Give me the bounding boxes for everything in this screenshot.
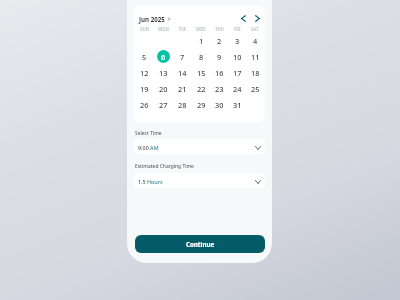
button[interactable]: 29 (195, 98, 208, 111)
staticText: 11 (251, 52, 260, 62)
button[interactable]: 4 (249, 34, 262, 47)
staticText: 10 (233, 52, 242, 62)
staticText: 30 (215, 100, 224, 110)
staticText: 25 (251, 84, 260, 94)
staticText: 1.5 Hours (138, 178, 163, 185)
button[interactable]: 20 (157, 82, 170, 95)
staticText: 26 (140, 100, 149, 110)
staticText: 15 (197, 68, 206, 78)
button[interactable]: 3 (231, 34, 244, 47)
button[interactable]: Jun 2025 (139, 15, 171, 23)
button[interactable]: 24 (231, 82, 244, 95)
staticText: 1 (199, 36, 204, 46)
button[interactable]: 15 (195, 66, 208, 79)
staticText: 19 (140, 84, 149, 94)
button[interactable]: 17 (231, 66, 244, 79)
staticText: 9:00 AM (138, 144, 159, 151)
button[interactable]: 9 (213, 50, 226, 63)
button[interactable]: 12 (138, 66, 151, 79)
staticText: 3 (235, 36, 240, 46)
staticText: Continue (186, 240, 215, 248)
button[interactable]: 26 (138, 98, 151, 111)
staticText: FRI (234, 26, 241, 32)
staticText: 2 (217, 36, 222, 46)
button[interactable]: 21 (176, 82, 189, 95)
button[interactable]: 28 (176, 98, 189, 111)
button[interactable]: Next month (252, 13, 263, 24)
button[interactable]: 31 (231, 98, 244, 111)
staticText: 9 (217, 52, 222, 62)
staticText: 4 (253, 36, 258, 46)
staticText: 24 (233, 84, 242, 94)
staticText: THU (215, 26, 224, 32)
staticText: 31 (233, 100, 242, 110)
button[interactable]: 25 (249, 82, 262, 95)
staticText: 5 (142, 52, 147, 62)
staticText: 23 (215, 84, 224, 94)
staticText: 27 (159, 100, 168, 110)
staticText: Jun 2025 (139, 15, 165, 23)
button[interactable]: 23 (213, 82, 226, 95)
button[interactable]: 5 (138, 50, 151, 63)
staticText: 16 (215, 68, 224, 78)
staticText: 6 (161, 52, 166, 62)
staticText: SUN (140, 26, 150, 32)
staticText: 21 (178, 84, 187, 94)
button[interactable]: 14 (176, 66, 189, 79)
button[interactable]: 1.5 Hours (134, 173, 265, 188)
button[interactable]: 11 (249, 50, 262, 63)
button[interactable]: 18 (249, 66, 262, 79)
button[interactable]: Previous month (238, 13, 249, 24)
button[interactable]: 8 (195, 50, 208, 63)
button[interactable]: 9:00 AM (134, 139, 265, 154)
button[interactable]: 10 (231, 50, 244, 63)
staticText: TUE (178, 26, 187, 32)
staticText: 13 (159, 68, 168, 78)
button[interactable]: Continue (135, 235, 265, 253)
staticText: 28 (178, 100, 187, 110)
staticText: 8 (199, 52, 204, 62)
staticText: 29 (197, 100, 206, 110)
staticText: Select Time (135, 130, 162, 137)
staticText: SAT (251, 26, 259, 32)
staticText: WED (196, 26, 206, 32)
button[interactable]: 2 (213, 34, 226, 47)
button[interactable]: 19 (138, 82, 151, 95)
button[interactable]: 27 (157, 98, 170, 111)
staticText: MON (158, 26, 169, 32)
staticText: Estimated Charging Time (135, 163, 194, 170)
button[interactable]: 7 (176, 50, 189, 63)
button[interactable]: 1 (195, 34, 208, 47)
staticText: 12 (140, 68, 149, 78)
button[interactable]: 6 (157, 50, 170, 63)
staticText: 17 (233, 68, 242, 78)
button[interactable]: 30 (213, 98, 226, 111)
staticText: 22 (197, 84, 206, 94)
staticText: 14 (178, 68, 187, 78)
staticText: 20 (159, 84, 168, 94)
staticText: 18 (251, 68, 260, 78)
button[interactable]: 16 (213, 66, 226, 79)
button[interactable]: 13 (157, 66, 170, 79)
staticText: 7 (180, 52, 185, 62)
button[interactable]: 22 (195, 82, 208, 95)
